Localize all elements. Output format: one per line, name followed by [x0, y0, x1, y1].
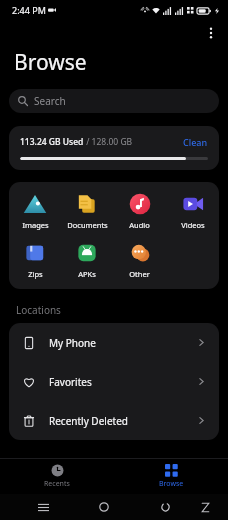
staticText: 113.24 GB Used	[20, 136, 84, 148]
button[interactable]: APKs	[61, 241, 113, 279]
staticText: Zips	[28, 269, 43, 279]
staticText: 2:44 PM	[12, 4, 46, 16]
staticText: APKs	[78, 269, 96, 279]
staticText: Favorites	[49, 375, 92, 389]
staticText: Other	[129, 269, 150, 279]
staticText: Browse	[14, 48, 87, 77]
staticText: Images	[22, 220, 49, 230]
staticText: Locations	[16, 303, 61, 317]
button[interactable]: Clean	[183, 136, 208, 148]
staticText: My Phone	[49, 336, 96, 350]
button[interactable]: Recently Deleted	[9, 401, 219, 440]
staticText: Recently Deleted	[49, 414, 128, 428]
button[interactable]: Other	[113, 241, 166, 279]
button[interactable]: Screenshot	[196, 498, 214, 516]
button[interactable]: Audio	[113, 192, 166, 230]
staticText: Recents	[44, 479, 70, 489]
staticText: Videos	[181, 220, 205, 230]
button[interactable]: Documents	[61, 192, 113, 230]
staticText: Documents	[67, 220, 108, 230]
staticText: Audio	[129, 220, 150, 230]
button[interactable]: Recent apps	[34, 498, 52, 516]
button[interactable]: My Phone	[9, 323, 219, 362]
button[interactable]: Back	[156, 498, 174, 516]
staticText: / 128.00 GB	[84, 136, 133, 148]
button[interactable]: Zips	[9, 241, 61, 279]
button[interactable]: Images	[9, 192, 61, 230]
button[interactable]: Recents	[0, 464, 114, 489]
button[interactable]: 113.24 GB Used	[9, 126, 219, 170]
button[interactable]: Search	[9, 89, 219, 113]
staticText: Browse	[159, 479, 184, 489]
button[interactable]: More options	[200, 22, 222, 44]
staticText: Search	[34, 94, 66, 108]
button[interactable]: Home	[95, 498, 113, 516]
button[interactable]: Browse	[114, 464, 228, 489]
button[interactable]: Favorites	[9, 362, 219, 401]
staticText: Clean	[183, 136, 208, 148]
button[interactable]: Videos	[166, 192, 219, 230]
